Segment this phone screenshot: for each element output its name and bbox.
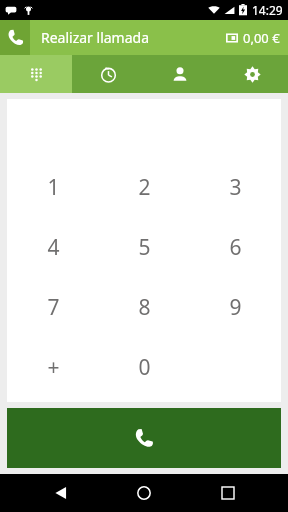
staticText: 9: [229, 293, 242, 322]
button[interactable]: 0: [99, 337, 190, 397]
button[interactable]: Llamar: [0, 20, 30, 55]
button[interactable]: Inicio: [121, 474, 167, 512]
staticText: Realizar llamada: [41, 28, 150, 47]
button[interactable]: Recientes: [205, 474, 251, 512]
staticText: 3: [229, 173, 242, 202]
staticText: 1: [47, 173, 60, 202]
staticText: +: [47, 353, 60, 382]
button[interactable]: 2: [99, 157, 190, 217]
button[interactable]: Historial: [72, 55, 144, 93]
button[interactable]: Teclado: [0, 55, 72, 93]
staticText: 4: [47, 233, 60, 262]
button[interactable]: Llamar: [7, 408, 281, 468]
staticText: 14:29: [252, 2, 283, 18]
button[interactable]: +: [7, 337, 99, 397]
button[interactable]: 3: [190, 157, 281, 217]
button[interactable]: 8: [99, 277, 190, 337]
staticText: 0,00 €: [243, 29, 280, 47]
staticText: 8: [138, 293, 151, 322]
button[interactable]: Ajustes: [216, 55, 288, 93]
button[interactable]: 9: [190, 277, 281, 337]
staticText: 0: [138, 353, 151, 382]
button[interactable]: 6: [190, 217, 281, 277]
button[interactable]: 5: [99, 217, 190, 277]
staticText: 6: [229, 233, 242, 262]
staticText: 2: [138, 173, 151, 202]
button[interactable]: 0,00 €: [226, 29, 280, 47]
staticText: 5: [138, 233, 151, 262]
button[interactable]: 4: [7, 217, 99, 277]
button[interactable]: Contactos: [144, 55, 216, 93]
button[interactable]: 7: [7, 277, 99, 337]
button[interactable]: 1: [7, 157, 99, 217]
button[interactable]: Atrás: [38, 474, 84, 512]
staticText: 7: [47, 293, 60, 322]
